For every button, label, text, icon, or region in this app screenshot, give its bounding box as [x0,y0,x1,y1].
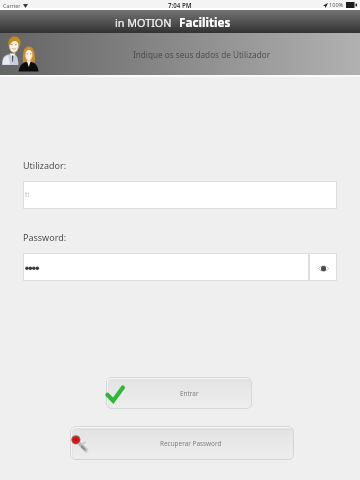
staticText: Entrar [180,389,199,398]
button[interactable]: ti [23,181,337,209]
button[interactable]: Recuperar Password [70,426,294,460]
staticText: Password: [23,231,67,243]
staticText: Carrier [3,2,21,9]
staticText: ti [25,190,30,200]
button[interactable]: Show password [309,253,337,281]
staticText: Recuperar Password [160,439,222,448]
button[interactable] [23,253,309,281]
staticText: 100% [329,1,344,9]
staticText: Utilizador: [23,159,67,171]
staticText: 7:04 PM [168,1,192,9]
staticText: Indique os seus dados de Utilizador [133,49,271,60]
button[interactable]: Entrar [106,377,252,409]
staticText: in MOTION [115,15,172,30]
staticText: Facilities [179,14,231,30]
